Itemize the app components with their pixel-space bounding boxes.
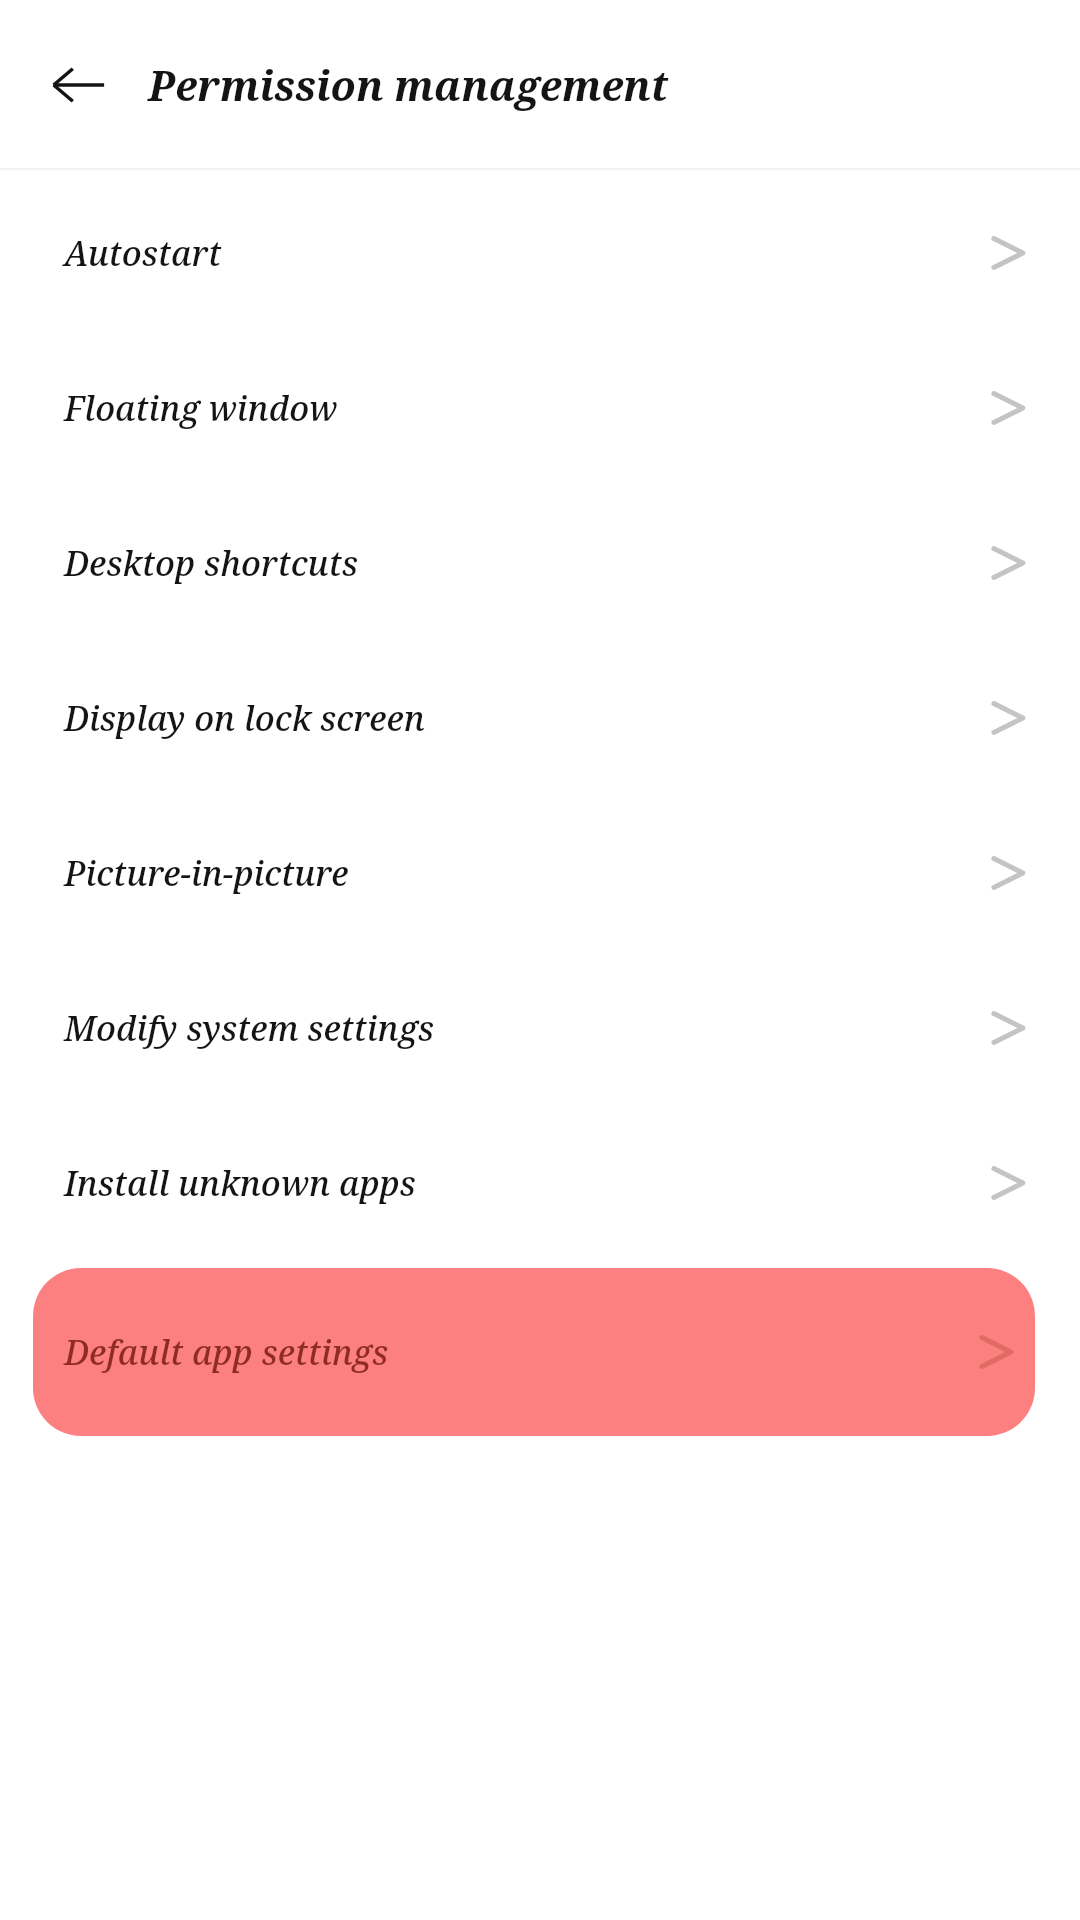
- button[interactable]: Install unknown apps: [0, 1121, 1080, 1245]
- button[interactable]: Floating window: [0, 346, 1080, 470]
- button[interactable]: Default app settings: [33, 1268, 1035, 1436]
- staticText: Picture-in-picture: [64, 850, 349, 896]
- button[interactable]: Desktop shortcuts: [0, 501, 1080, 625]
- staticText: Modify system settings: [64, 1005, 435, 1051]
- staticText: Desktop shortcuts: [64, 540, 358, 586]
- staticText: Autostart: [64, 230, 222, 276]
- staticText: Display on lock screen: [64, 695, 425, 741]
- button[interactable]: Autostart: [0, 191, 1080, 315]
- staticText: Floating window: [64, 385, 338, 431]
- staticText: Install unknown apps: [64, 1160, 416, 1206]
- button[interactable]: Back: [44, 51, 112, 119]
- staticText: Permission management: [148, 57, 669, 113]
- button[interactable]: Display on lock screen: [0, 656, 1080, 780]
- button[interactable]: Picture-in-picture: [0, 811, 1080, 935]
- staticText: Default app settings: [64, 1329, 389, 1375]
- button[interactable]: Modify system settings: [0, 966, 1080, 1090]
